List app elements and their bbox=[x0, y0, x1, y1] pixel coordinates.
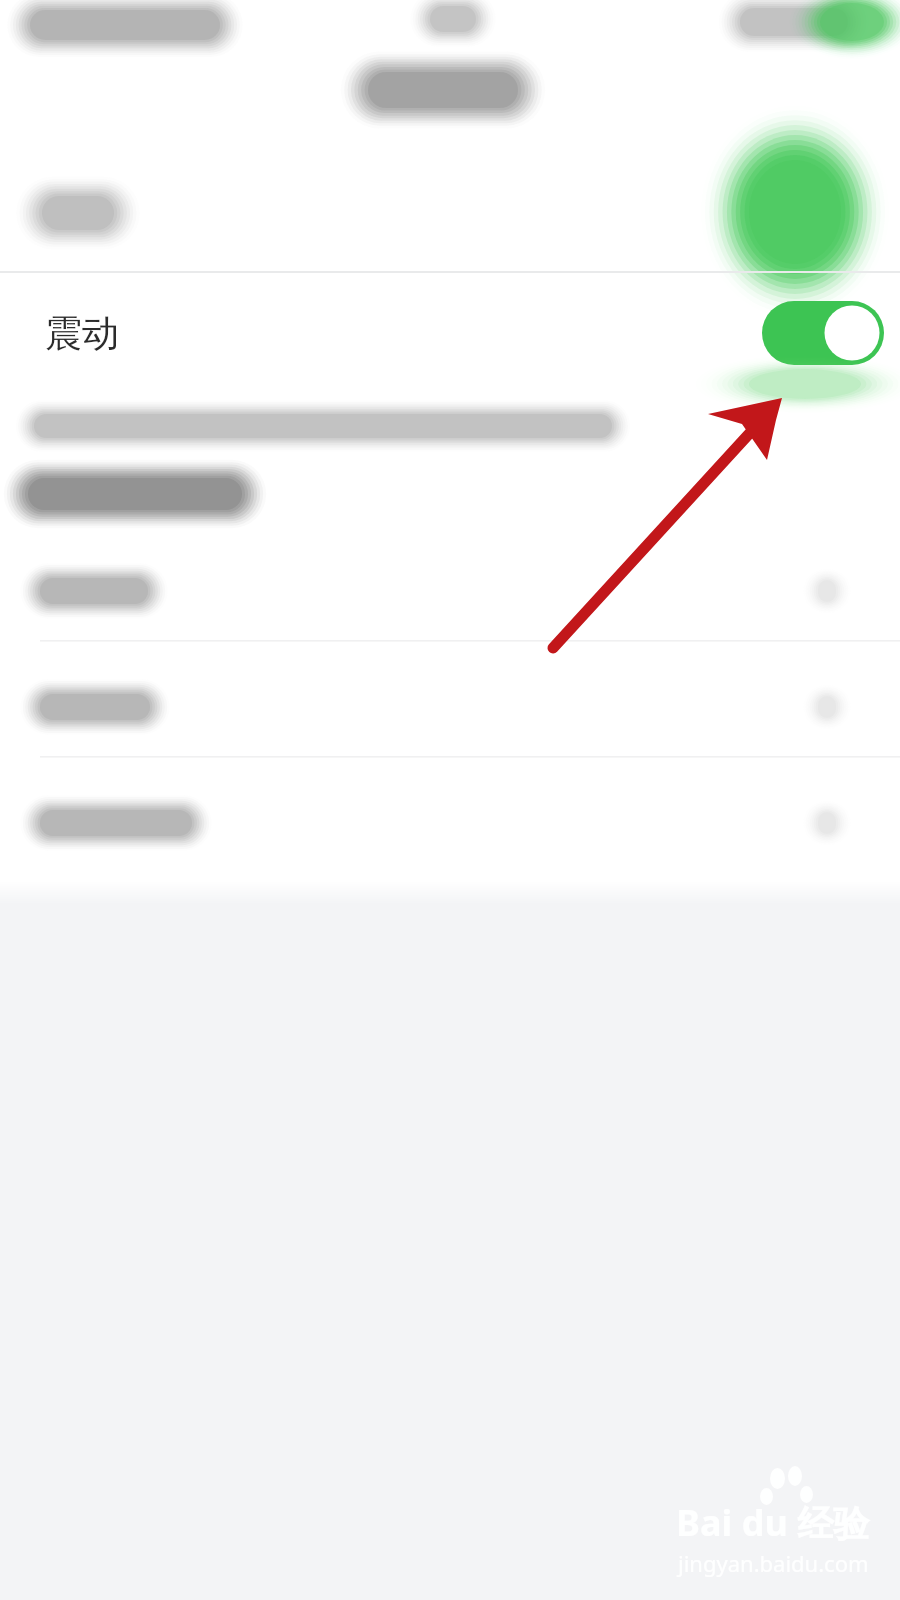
button[interactable]: 列表项 3 bbox=[0, 780, 900, 886]
button[interactable]: 列表项 1 bbox=[0, 548, 900, 658]
button[interactable]: 设置项 bbox=[0, 160, 900, 272]
button[interactable]: 震动 开关 bbox=[0, 276, 900, 390]
button[interactable]: 震动 开关 bbox=[762, 301, 884, 365]
button[interactable]: 列表项 2 bbox=[0, 664, 900, 774]
